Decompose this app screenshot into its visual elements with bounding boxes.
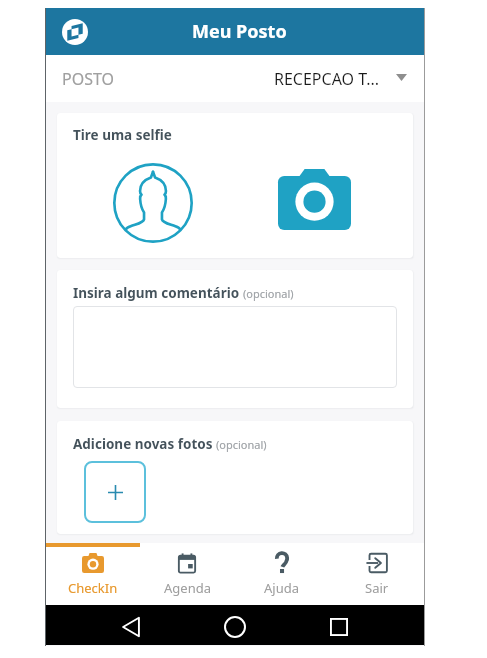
staticText: Ajuda [264,579,299,597]
button[interactable]: Back [111,607,151,647]
button[interactable]: Ajuda [234,543,329,605]
staticText: Adicione novas fotos [73,435,213,453]
button[interactable]: CheckIn [46,543,140,605]
button[interactable]: Tirar foto [276,167,352,231]
button[interactable]: Sair [329,543,424,605]
button[interactable]: Recents [319,607,359,647]
button[interactable]: Selfie [113,163,193,243]
staticText: (opcional) [216,437,267,452]
staticText: (opcional) [243,286,294,301]
staticText: Meu Posto [192,19,287,44]
staticText: RECEPCAO T... [274,68,380,90]
button[interactable] [73,306,397,388]
staticText: POSTO [62,68,115,90]
staticText: Insira algum comentário [73,284,240,302]
staticText: Tire uma selfie [73,126,172,144]
button[interactable]: Adicionar foto [84,461,146,523]
staticText: CheckIn [68,579,118,597]
staticText: Sair [365,579,389,597]
button[interactable]: Menu [57,14,93,50]
button[interactable]: POSTO [46,55,424,102]
staticText: Agenda [164,579,211,597]
button[interactable]: Agenda [140,543,234,605]
button[interactable]: Home [215,607,255,647]
